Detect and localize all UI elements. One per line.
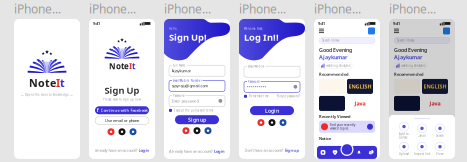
staticText: Recently Viewed bbox=[319, 114, 351, 119]
button[interactable]: find your recently viewed topics bbox=[319, 121, 375, 133]
button[interactable]: Forgot password? bbox=[277, 94, 300, 98]
button[interactable]: Don't have an account? bbox=[244, 148, 299, 153]
staticText: Email/Mobile bbox=[248, 65, 265, 68]
button[interactable]: Close bbox=[431, 142, 449, 156]
staticText: Hello, bbox=[169, 27, 178, 30]
staticText: Password bbox=[173, 94, 185, 97]
staticText: I bbox=[56, 76, 60, 90]
staticText: iPhone... bbox=[389, 1, 436, 17]
staticText: Good Evening bbox=[394, 46, 427, 53]
button[interactable]: Sign in with Google bbox=[182, 127, 189, 134]
staticText: watching Analytics bbox=[401, 64, 425, 67]
button[interactable]: Favorites bbox=[329, 146, 341, 159]
staticText: Ajaykumar bbox=[394, 53, 422, 61]
staticText: Enter password bbox=[172, 98, 199, 103]
button[interactable]: Sign in with Facebook bbox=[204, 127, 211, 134]
staticText: 9:41 bbox=[393, 21, 400, 26]
staticText: Inspect link bbox=[414, 152, 430, 156]
staticText: Log In!! bbox=[244, 31, 279, 43]
staticText: iPhone... bbox=[14, 1, 61, 17]
button[interactable]: Sign in with Facebook bbox=[279, 119, 286, 126]
staticText: ENGLISH bbox=[423, 83, 446, 90]
button[interactable]: already have an account? bbox=[94, 148, 149, 153]
staticText: Remember me bbox=[249, 94, 269, 98]
button[interactable]: Upload bbox=[395, 142, 413, 156]
staticText: Don't have an account? bbox=[244, 148, 283, 153]
staticText: 9:41 bbox=[318, 21, 325, 26]
staticText: Password bbox=[248, 80, 260, 83]
staticText: Recommended bbox=[319, 72, 349, 77]
staticText: Notice bbox=[394, 136, 406, 141]
staticText: Continue with Facebook bbox=[100, 108, 147, 113]
button[interactable]: Use email or phone bbox=[95, 117, 149, 124]
button[interactable]: Scan bbox=[340, 143, 353, 156]
staticText: already have an account? bbox=[94, 148, 137, 153]
button[interactable]: Add to Library bbox=[395, 122, 413, 139]
button[interactable]: Search library bbox=[319, 37, 375, 43]
staticText: find your recently viewed topics bbox=[405, 123, 430, 130]
button[interactable]: find your recently viewed topics bbox=[394, 121, 450, 133]
staticText: Login bbox=[138, 148, 149, 153]
staticText: Search bbox=[436, 134, 444, 137]
staticText: Note bbox=[109, 61, 129, 71]
button[interactable]: Cancel bbox=[413, 124, 431, 137]
staticText: Sign up bbox=[188, 116, 206, 123]
staticText: t bbox=[132, 61, 135, 71]
button[interactable]: Sign up bbox=[175, 115, 219, 124]
staticText: iPhone... bbox=[89, 1, 136, 17]
staticText: Add to Library bbox=[399, 132, 409, 139]
button[interactable]: Sign in with Apple bbox=[193, 127, 200, 134]
button[interactable]: watching Analytics bbox=[319, 63, 352, 69]
staticText: Good Evening bbox=[319, 46, 352, 53]
button[interactable]: Sign in with Google bbox=[107, 128, 114, 135]
staticText: ENGLISH bbox=[348, 83, 371, 90]
staticText: f bbox=[96, 107, 98, 114]
staticText: Welcome Back, bbox=[244, 27, 263, 30]
staticText: Recommended bbox=[394, 72, 424, 77]
staticText: t bbox=[60, 76, 65, 90]
button[interactable]: Profile bbox=[365, 146, 377, 159]
staticText: ajayraju@gmail.com bbox=[172, 83, 209, 88]
staticText: Ajaykumar bbox=[319, 53, 347, 61]
staticText: find your recently viewed topics bbox=[330, 123, 355, 130]
button[interactable]: Menu bbox=[394, 29, 399, 33]
staticText: Please wait to sign up now bbox=[103, 98, 141, 101]
staticText: Upload bbox=[399, 152, 409, 156]
button[interactable]: Home bbox=[317, 146, 329, 159]
staticText: iPhone... bbox=[164, 1, 211, 17]
staticText: Close bbox=[436, 152, 444, 156]
staticText: I bbox=[129, 61, 132, 71]
button[interactable]: Sign in with Google bbox=[257, 119, 264, 126]
staticText: iPhone... bbox=[239, 1, 286, 17]
staticText: Forgot password? bbox=[277, 94, 300, 98]
staticText: Ajaykumar bbox=[172, 68, 192, 73]
staticText: Already have an account? bbox=[169, 149, 213, 154]
staticText: Search library bbox=[322, 39, 339, 42]
staticText: Login bbox=[265, 107, 279, 114]
staticText: 9:41 bbox=[93, 21, 100, 26]
staticText: Login bbox=[214, 149, 225, 154]
button[interactable]: Search library bbox=[394, 37, 450, 43]
button[interactable]: Notifications bbox=[353, 146, 365, 159]
staticText: I accept the policy and terms bbox=[174, 109, 213, 112]
button[interactable]: Login bbox=[250, 106, 294, 115]
staticText: Signup bbox=[284, 148, 299, 153]
staticText: Full Name bbox=[173, 64, 186, 67]
button[interactable]: Menu bbox=[319, 29, 324, 33]
button[interactable]: Sign in with Apple bbox=[268, 119, 275, 126]
button[interactable]: Profile bbox=[368, 27, 375, 34]
staticText: — Opens the door to knowledge.— bbox=[21, 93, 73, 96]
staticText: Sign Up! bbox=[169, 31, 207, 43]
staticText: Recently Viewed bbox=[394, 114, 426, 119]
button[interactable]: Sign in with Facebook bbox=[129, 128, 136, 135]
button[interactable]: Search bbox=[431, 124, 449, 137]
button[interactable]: f bbox=[95, 106, 149, 114]
staticText: watching Analytics bbox=[326, 64, 350, 67]
button[interactable]: watching Analytics bbox=[394, 63, 427, 69]
staticText: Java bbox=[354, 100, 365, 107]
staticText: Search library bbox=[397, 39, 414, 42]
button[interactable]: Already have an account? bbox=[169, 149, 225, 154]
button[interactable]: Profile bbox=[443, 27, 450, 34]
button[interactable]: Inspect link bbox=[413, 142, 431, 156]
button[interactable]: Sign in with Apple bbox=[118, 128, 125, 135]
